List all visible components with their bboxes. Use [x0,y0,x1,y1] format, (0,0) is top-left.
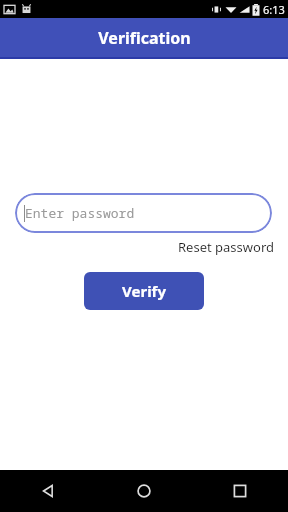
button[interactable]: Recent apps [192,470,288,512]
staticText: Enter password [25,204,135,222]
staticText: Reset password [178,238,274,256]
button[interactable]: Back [0,470,96,512]
button[interactable]: Reset password [178,237,288,257]
button[interactable]: Enter password [15,193,272,233]
button[interactable]: Verify [84,272,204,310]
staticText: 6:13 [263,2,285,17]
staticText: Verification [98,27,191,49]
button[interactable]: Home [96,470,192,512]
staticText: Verify [122,281,166,301]
